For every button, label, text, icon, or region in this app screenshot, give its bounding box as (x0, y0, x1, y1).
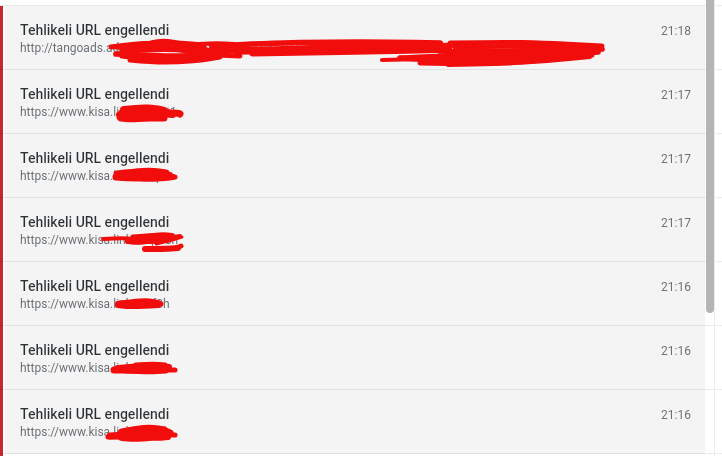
staticText: 21:17 (661, 216, 691, 230)
staticText: Tehlikeli URL engellendi (20, 22, 170, 38)
button[interactable]: Tehlikeli URL engellendi (0, 6, 722, 70)
staticText: 21:17 (661, 88, 691, 102)
staticText: Tehlikeli URL engellendi (20, 406, 170, 422)
staticText: Tehlikeli URL engellendi (20, 278, 170, 294)
staticText: Tehlikeli URL engellendi (20, 150, 170, 166)
staticText: http://tangoads.adsmoloco.xml.com/v1/ads… (20, 41, 344, 55)
button[interactable]: Tehlikeli URL engellendi (0, 262, 722, 326)
button[interactable]: Tehlikeli URL engellendi (0, 70, 722, 134)
staticText: https://www.kisa.link/5Ld3b (20, 425, 171, 439)
button[interactable]: Tehlikeli URL engellendi (0, 326, 722, 390)
staticText: 21:16 (661, 344, 691, 358)
button[interactable]: Tehlikeli URL engellendi (0, 198, 722, 262)
staticText: Tehlikeli URL engellendi (20, 214, 170, 230)
staticText: 21:16 (661, 280, 691, 294)
staticText: 21:17 (661, 152, 691, 166)
staticText: Tehlikeli URL engellendi (20, 342, 170, 358)
staticText: https://www.kisa.link/4Nf8h (20, 297, 170, 311)
staticText: https://www.kisa.link/9Nq4L (20, 169, 173, 183)
staticText: 21:18 (661, 24, 691, 38)
button[interactable]: Tehlikeli URL engellendi (0, 134, 722, 198)
staticText: https://www.kisa.link/7Qv2n (20, 361, 171, 375)
staticText: Tehlikeli URL engellendi (20, 86, 170, 102)
staticText: https://www.kisa.link/8Ma?t1 (20, 105, 177, 119)
staticText: https://www.kisa.link/2Kp9Sh (20, 233, 179, 247)
button[interactable]: Tehlikeli URL engellendi (0, 390, 722, 454)
staticText: 21:16 (661, 408, 691, 422)
